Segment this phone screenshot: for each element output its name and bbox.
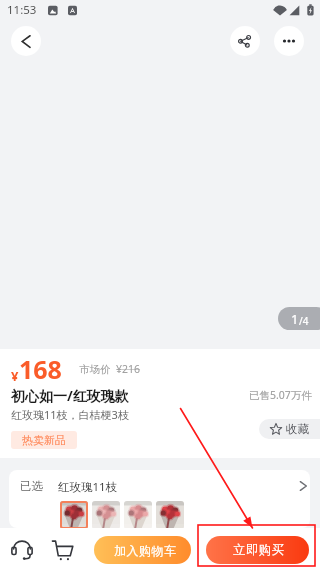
staticText: 红玫瑰11枝	[58, 479, 118, 495]
button[interactable]: Shopping cart	[47, 534, 77, 564]
button[interactable]: Customer service	[7, 534, 37, 564]
button[interactable]: 收藏	[259, 419, 320, 439]
staticText: 红玫瑰11枝，白桔梗3枝	[11, 407, 129, 422]
button[interactable]: 加入购物车	[94, 536, 191, 564]
button[interactable]: Back	[11, 26, 41, 56]
button[interactable]: 立即购买	[206, 536, 309, 564]
staticText: 市场价	[79, 363, 111, 376]
staticText: 已选	[20, 479, 43, 493]
staticText: 热卖新品	[22, 433, 66, 447]
staticText: /4	[299, 314, 309, 328]
staticText: ¥216	[116, 362, 141, 376]
staticText: 1	[291, 310, 299, 328]
staticText: 11:53	[7, 2, 37, 18]
button[interactable]: More options	[274, 26, 304, 56]
staticText: 初心如一/红玫瑰款	[11, 386, 129, 405]
staticText: 已售5.07万件	[249, 388, 312, 402]
staticText: 立即购买	[233, 542, 285, 558]
staticText: ¥	[11, 367, 19, 385]
button[interactable]: Share	[230, 26, 260, 56]
staticText: 加入购物车	[114, 543, 177, 558]
staticText: 168	[19, 352, 62, 386]
button[interactable]: 已选	[9, 470, 310, 528]
staticText: 收藏	[286, 422, 309, 436]
